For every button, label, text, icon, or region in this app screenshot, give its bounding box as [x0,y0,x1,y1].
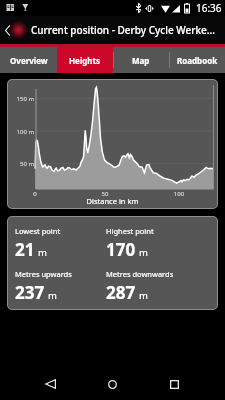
staticText: 100 [159,190,199,198]
button[interactable]: Highest point [106,226,154,261]
button[interactable]: Lowest point [15,226,61,261]
button[interactable]: Roadbook [169,47,225,73]
staticText: 21 [15,238,35,261]
staticText: m [139,246,148,259]
button[interactable]: Metres downwards [106,269,174,304]
button[interactable]: Heights [57,47,113,73]
staticText: 0 [15,190,55,198]
staticText: m [139,289,148,302]
staticText: Highest point [106,226,154,236]
staticText: Map [132,55,150,66]
staticText: Metres downwards [106,269,174,279]
button[interactable]: Back [30,368,70,400]
staticText: m [38,246,47,259]
staticText: Roadbook [177,55,218,66]
button[interactable]: Metres upwards [15,269,72,304]
staticText: Current position - Derby Cycle Werke... [31,23,215,37]
staticText: Distance in km [7,196,218,206]
staticText: 16:36 [196,1,222,15]
button[interactable]: Back [0,16,14,44]
staticText: 170 [106,238,136,261]
button[interactable]: Overview [0,47,57,73]
staticText: 150 m [7,95,34,103]
staticText: 100 m [7,128,34,136]
staticText: Overview [10,55,48,66]
staticText: Lowest point [15,226,61,236]
staticText: Heights [69,55,101,66]
button[interactable]: Recent apps [154,368,194,400]
staticText: 287 [106,281,136,304]
staticText: 237 [15,281,45,304]
staticText: 50 [85,190,125,198]
staticText: m [48,289,57,302]
staticText: Metres upwards [15,269,72,279]
button[interactable]: Map [113,47,169,73]
button[interactable]: Home [92,368,132,400]
staticText: 50 m [7,160,34,168]
